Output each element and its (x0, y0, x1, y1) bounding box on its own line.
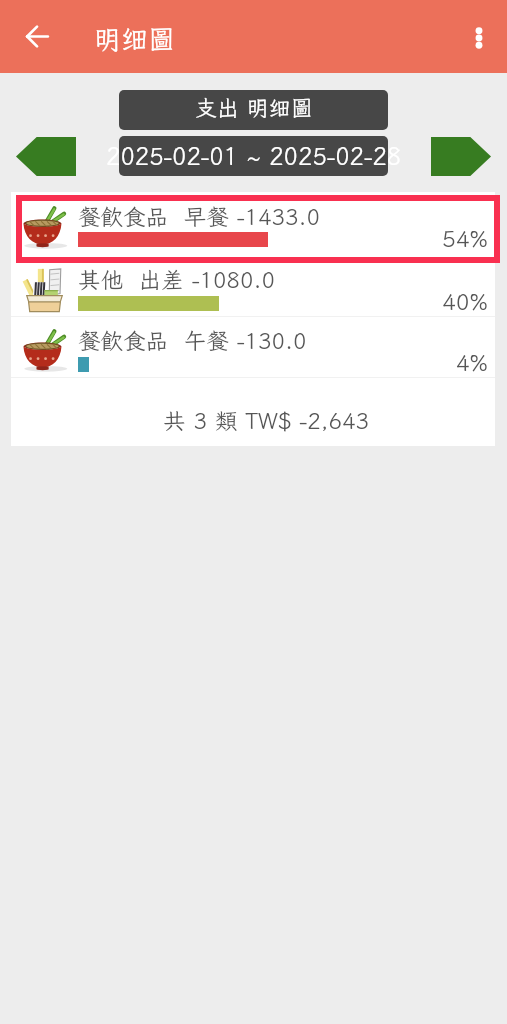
button[interactable]: 其他 出差 -1080.0 (11, 256, 495, 316)
staticText: 明细圖 (94, 21, 175, 57)
staticText: 餐飲食品 早餐 -1433.0 (78, 202, 320, 232)
staticText: 54% (441, 223, 488, 253)
staticText: 餐飲食品 午餐 -130.0 (78, 326, 307, 356)
button[interactable]: More options (455, 14, 503, 62)
staticText: 支出 明细圖 (195, 93, 313, 122)
button[interactable]: 支出 明细圖 (119, 90, 388, 130)
button[interactable]: Previous period (16, 137, 76, 176)
button[interactable]: Back (14, 13, 61, 60)
staticText: 其他 出差 -1080.0 (78, 265, 275, 295)
button[interactable]: 餐飲食品 早餐 -1433.0 (11, 192, 495, 256)
staticText: 2025-02-01 ~ 2025-02-28 (106, 140, 402, 172)
staticText: 共 3 類 TW$ -2,643 (163, 406, 370, 436)
staticText: 40% (441, 286, 488, 316)
button[interactable]: 餐飲食品 午餐 -130.0 (11, 317, 495, 377)
button[interactable] (119, 136, 388, 176)
staticText: 4% (455, 347, 488, 377)
button[interactable]: Next period (431, 137, 491, 176)
